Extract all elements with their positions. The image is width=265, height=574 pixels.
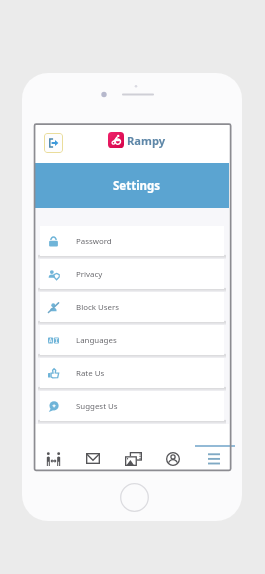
button[interactable]: Block Users: [40, 292, 224, 322]
staticText: Settings: [113, 178, 161, 194]
button[interactable]: Password: [40, 226, 224, 256]
button[interactable]: Profile: [153, 445, 193, 470]
staticText: Suggest Us: [76, 401, 118, 412]
button[interactable]: Logout: [44, 133, 63, 153]
button[interactable]: Suggest Us: [40, 391, 224, 421]
staticText: Languages: [76, 335, 117, 346]
staticText: Block Users: [76, 302, 120, 313]
button[interactable]: Media: [113, 445, 153, 470]
staticText: Rampy: [127, 133, 166, 148]
button[interactable]: Privacy: [40, 259, 224, 289]
button[interactable]: Messages: [73, 445, 113, 470]
staticText: Rate Us: [76, 368, 105, 379]
staticText: Password: [76, 236, 112, 247]
button[interactable]: Languages: [40, 325, 224, 355]
staticText: Privacy: [76, 269, 103, 280]
button[interactable]: Rate Us: [40, 358, 224, 388]
button[interactable]: Community: [33, 445, 73, 470]
button[interactable]: Menu: [194, 445, 234, 470]
